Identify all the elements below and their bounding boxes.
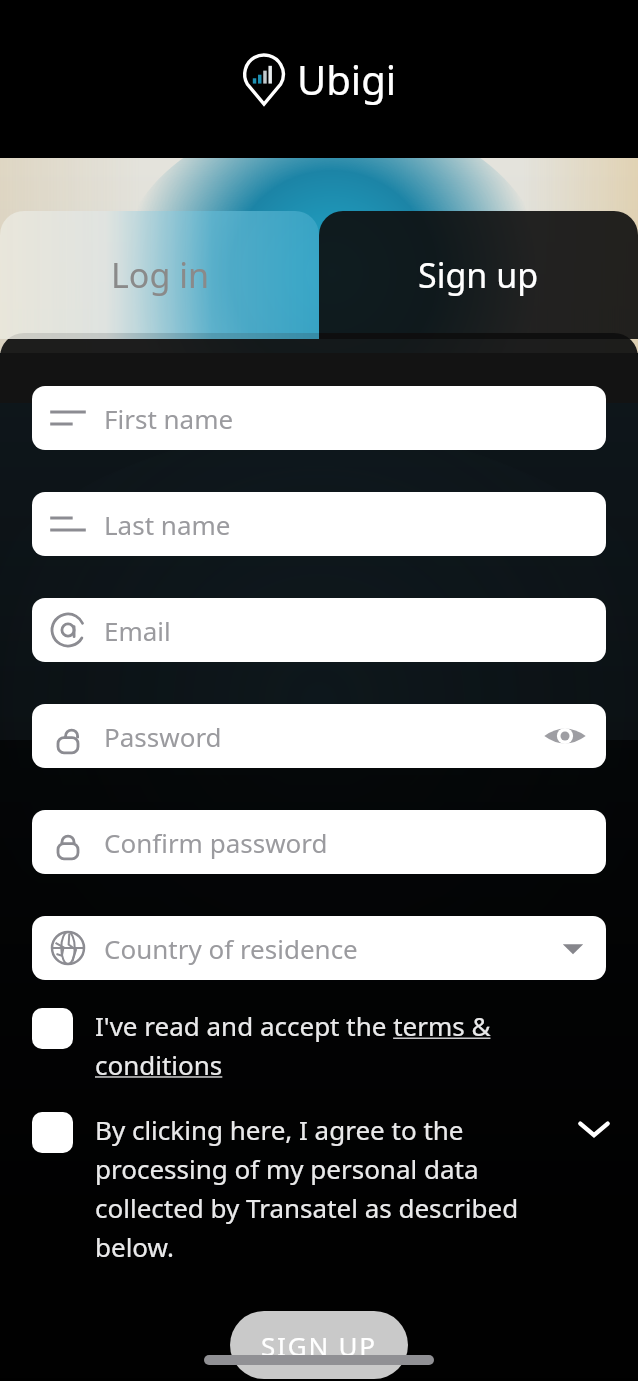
button[interactable]: Sign up bbox=[319, 211, 638, 339]
button[interactable]: Checkbox bbox=[32, 1112, 612, 1264]
staticText: By clicking here, I agree to the process… bbox=[95, 1112, 562, 1264]
staticText: SIGN UP bbox=[261, 1328, 377, 1363]
other: Open country list bbox=[558, 936, 588, 960]
button[interactable]: Checkbox bbox=[32, 1008, 612, 1082]
other: Ubigi logo bbox=[241, 51, 287, 107]
staticText: Ubigi bbox=[297, 52, 397, 106]
button[interactable]: Log in bbox=[0, 211, 319, 339]
staticText: Password bbox=[104, 719, 222, 754]
button[interactable]: Password bbox=[32, 704, 606, 768]
staticText: I've read and accept the terms & conditi… bbox=[95, 1008, 612, 1082]
button[interactable]: Checkbox bbox=[32, 1112, 73, 1153]
button[interactable]: Last name bbox=[32, 492, 606, 556]
button[interactable]: Country of residence bbox=[32, 916, 606, 980]
staticText: Confirm password bbox=[104, 825, 328, 860]
other: Show password bbox=[542, 721, 588, 751]
staticText: Last name bbox=[104, 507, 231, 542]
staticText: Email bbox=[104, 613, 171, 648]
button[interactable]: First name bbox=[32, 386, 606, 450]
other: Expand bbox=[576, 1112, 612, 1146]
button[interactable]: Checkbox bbox=[32, 1008, 73, 1049]
button[interactable]: Email bbox=[32, 598, 606, 662]
staticText: Sign up bbox=[418, 252, 539, 298]
button[interactable]: SIGN UP bbox=[230, 1311, 408, 1379]
staticText: Country of residence bbox=[104, 931, 358, 966]
staticText: Log in bbox=[111, 252, 209, 298]
staticText: First name bbox=[104, 401, 234, 436]
button[interactable]: Confirm password bbox=[32, 810, 606, 874]
